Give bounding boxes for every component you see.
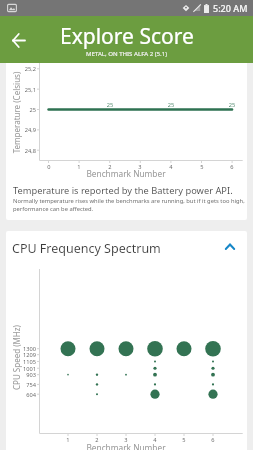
staticText: 5	[178, 436, 190, 444]
staticText: 24,8	[6, 147, 36, 155]
staticText: 4	[165, 163, 177, 171]
staticText: CPU Frequency Spectrum	[12, 240, 161, 257]
button[interactable]: CPU Frequency Spectrum	[6, 231, 247, 265]
staticText: 0	[43, 163, 55, 171]
staticText: 5:20 AM	[213, 2, 248, 14]
staticText: 2	[104, 163, 116, 171]
staticText: 1300	[6, 345, 36, 353]
staticText: Benchmark Number	[66, 442, 186, 450]
staticText: 1105	[6, 358, 36, 366]
staticText: Normally temperature rises while the ben…	[13, 197, 245, 213]
staticText: 1	[62, 436, 74, 444]
staticText: 24,9	[6, 126, 36, 134]
staticText: 754	[6, 381, 36, 389]
staticText: 903	[6, 371, 36, 379]
staticText: 3	[120, 436, 132, 444]
staticText: 1	[73, 163, 85, 171]
staticText: 25	[163, 101, 179, 109]
staticText: 25,1	[6, 86, 36, 94]
staticText: 604	[6, 391, 36, 399]
staticText: METAL, ON THIS ALFA 2 (5.1)	[86, 49, 167, 57]
staticText: 25	[102, 101, 118, 109]
staticText: Benchmark Number	[66, 168, 186, 179]
other: Collapse	[220, 237, 240, 257]
staticText: 25	[224, 101, 240, 109]
staticText: 25	[6, 106, 36, 114]
staticText: CPU Speed (MHz)	[10, 297, 21, 417]
staticText: 4	[149, 436, 161, 444]
staticText: 6	[207, 436, 219, 444]
staticText: 3	[134, 163, 146, 171]
staticText: 6	[226, 163, 238, 171]
staticText: 25,2	[6, 65, 36, 73]
staticText: 2	[91, 436, 103, 444]
staticText: 1001	[6, 365, 36, 373]
staticText: 1209	[6, 351, 36, 359]
staticText: 5	[196, 163, 208, 171]
staticText: Explore Score	[60, 22, 194, 51]
staticText: Temperature (Celsius)	[10, 52, 21, 172]
staticText: Temperature is reported by the Battery p…	[13, 184, 233, 197]
button[interactable]: Navigate up	[2, 24, 34, 56]
